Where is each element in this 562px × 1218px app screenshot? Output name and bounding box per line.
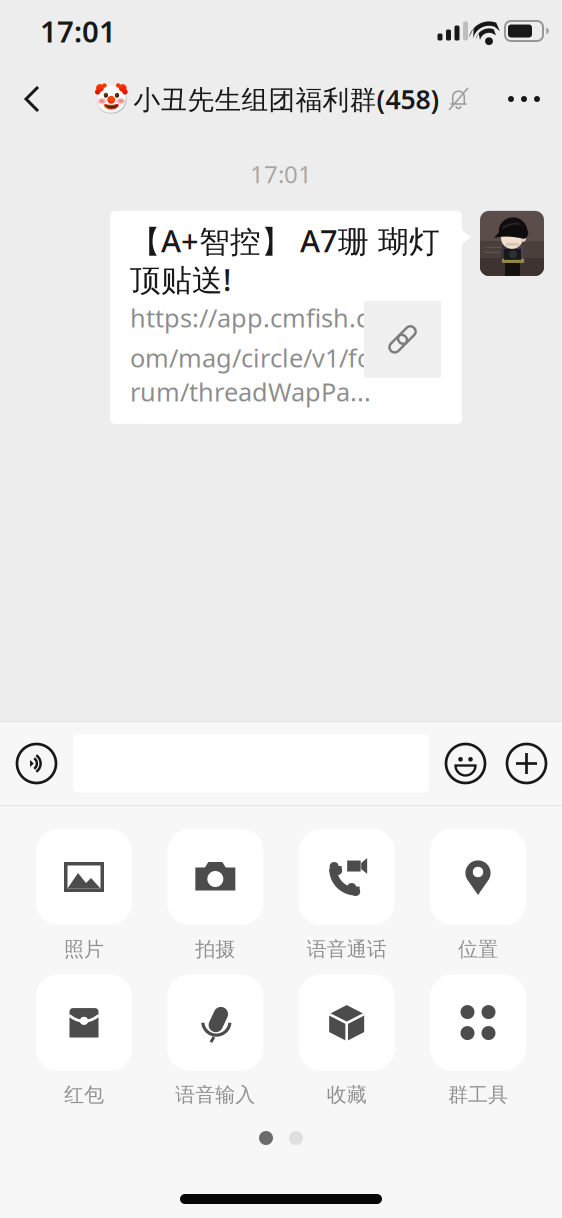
button[interactable]: 位置 [422,829,534,962]
button[interactable]: 语音输入 [159,975,271,1107]
staticText: 17:01 [40,11,116,50]
staticText: 【A+智控】 A7珊 瑚灯 [130,220,440,261]
staticText: 17:01 [250,158,312,190]
button[interactable]: Emoji [446,727,507,799]
staticText: 位置 [458,937,498,962]
button[interactable]: Back [10,73,62,125]
staticText: 群工具 [448,1083,508,1107]
staticText: 收藏 [327,1083,367,1107]
button[interactable]: 收藏 [291,975,403,1107]
button[interactable]: 语音通话 [291,829,403,962]
staticText: 顶贴送! [130,259,231,300]
button[interactable]: 拍摄 [159,829,271,962]
staticText: 小丑先生组团福利群(458) [133,81,439,117]
button[interactable]: Sender avatar [480,211,544,276]
button[interactable]: 【A+智控】 A7珊 瑚灯 [110,211,462,424]
staticText: 🤡 [92,82,129,116]
button[interactable]: More actions [507,727,546,799]
button[interactable]: Voice message [17,727,56,799]
button[interactable]: 群工具 [422,975,534,1107]
staticText: https://app.cmfish.c [130,301,368,334]
button[interactable]: 照片 [28,829,140,962]
button[interactable]: 红包 [28,975,140,1107]
staticText: 语音通话 [307,937,387,962]
staticText: 红包 [64,1083,104,1107]
button[interactable]: More options [496,73,552,125]
staticText: 语音输入 [175,1083,255,1107]
staticText: om/mag/circle/v1/fo [130,341,372,374]
staticText: 照片 [64,937,104,962]
staticText: rum/threadWapPa... [130,375,371,408]
staticText: 拍摄 [195,937,235,962]
